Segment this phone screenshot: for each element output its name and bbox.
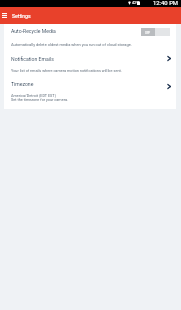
button[interactable]: Timezone — [4, 77, 176, 109]
staticText: 12:40 PM — [153, 0, 178, 7]
staticText: OFF — [145, 31, 151, 34]
staticText: Timezone — [11, 81, 34, 87]
staticText: Set the timezone for your camera. — [11, 97, 68, 101]
staticText: Settings — [12, 13, 31, 19]
staticText: Your list of emails where camera motion … — [11, 68, 122, 72]
button[interactable]: Auto-Recycle Media — [4, 24, 176, 52]
button[interactable]: Auto-Recycle Media switch, off — [141, 28, 170, 36]
staticText: Auto-Recycle Media — [11, 28, 56, 34]
staticText: America/Detroit (EDT EST) — [11, 93, 56, 97]
staticText: 42% — [132, 1, 139, 5]
staticText: Notification Emails — [11, 56, 54, 62]
button[interactable]: Notification Emails — [4, 52, 176, 77]
button[interactable]: Open navigation menu — [0, 7, 9, 24]
staticText: Automatically delete oldest media when y… — [11, 42, 132, 47]
